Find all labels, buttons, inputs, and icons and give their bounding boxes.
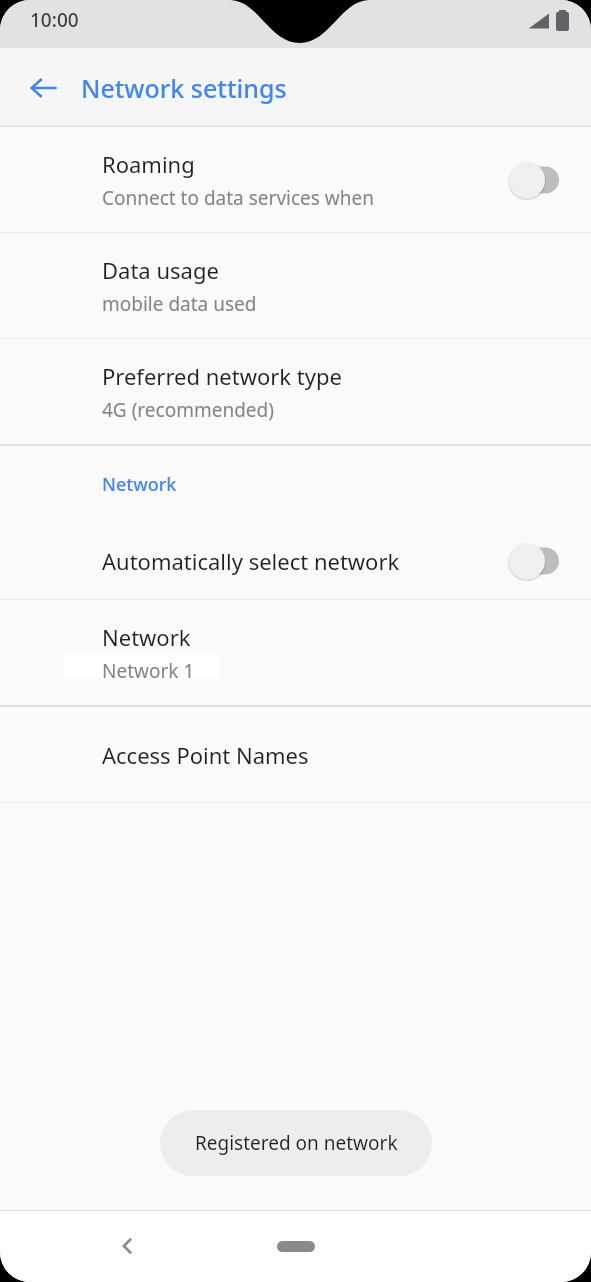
staticText: Network settings <box>81 71 287 105</box>
staticText: Roaming <box>102 149 195 179</box>
staticText: Data usage <box>102 255 219 285</box>
button[interactable]: Back <box>104 1222 152 1270</box>
staticText: 4G (recommended) <box>102 397 274 423</box>
staticText: 10:00 <box>30 7 79 33</box>
staticText: Network <box>102 622 191 652</box>
button[interactable]: Home <box>268 1222 324 1270</box>
button[interactable]: Automatically select network <box>0 523 591 599</box>
staticText: Network <box>102 472 177 497</box>
staticText: Access Point Names <box>102 740 309 770</box>
staticText: Registered on network <box>195 1130 398 1156</box>
button[interactable]: Network <box>0 600 591 705</box>
staticText: Network 1 <box>102 658 195 684</box>
button[interactable]: Toggle Automatically select network <box>503 537 567 585</box>
button[interactable]: Toggle Roaming <box>503 156 567 204</box>
button[interactable]: Preferred network type <box>0 339 591 444</box>
button[interactable]: Roaming <box>0 127 591 232</box>
button[interactable]: Access Point Names <box>0 707 591 802</box>
staticText: Preferred network type <box>102 361 342 391</box>
staticText: mobile data used <box>102 291 257 317</box>
staticText: Automatically select network <box>102 546 400 576</box>
staticText: Connect to data services when roaming <box>102 185 451 211</box>
button[interactable]: Data usage <box>0 233 591 338</box>
button[interactable]: Navigate up <box>18 62 70 114</box>
